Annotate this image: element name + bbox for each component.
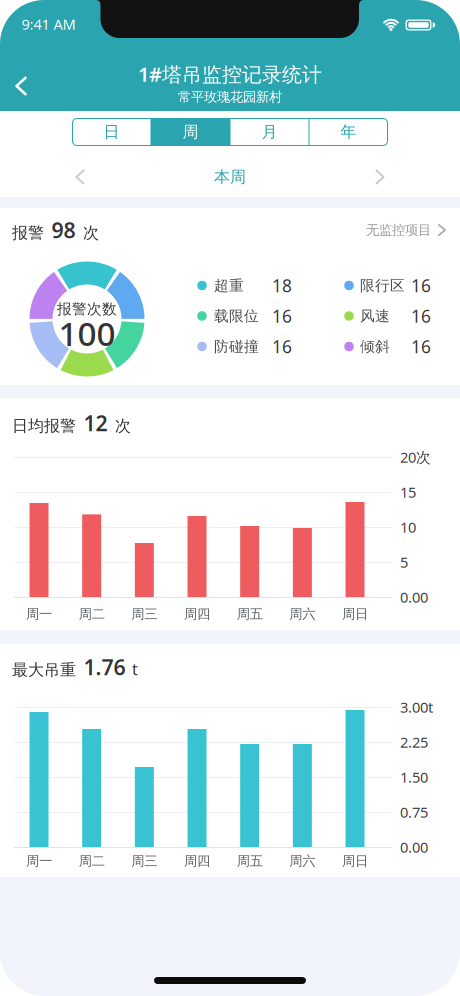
staticText: 周四 — [184, 853, 210, 869]
staticText: 周六 — [289, 606, 315, 622]
staticText: 周三 — [131, 853, 157, 869]
staticText: 次 — [78, 223, 99, 243]
staticText: 0.75 — [400, 802, 428, 822]
staticText: 次 — [110, 416, 131, 436]
staticText: 年 — [340, 122, 356, 142]
staticText: 超重 — [214, 276, 244, 294]
staticText: 15 — [400, 482, 416, 502]
staticText: 限行区 — [360, 276, 405, 294]
button[interactable]: 年 — [309, 118, 387, 146]
staticText: 12 — [83, 409, 107, 437]
staticText: 周日 — [342, 606, 368, 622]
staticText: 1#塔吊监控记录统计 — [138, 61, 322, 87]
staticText: 常平玫瑰花园新村 — [178, 89, 282, 105]
staticText: 最大吊重 — [12, 660, 81, 680]
staticText: 周四 — [184, 606, 210, 622]
button[interactable]: 日 — [72, 118, 150, 146]
staticText: 0.00 — [400, 837, 428, 857]
staticText: 周二 — [79, 853, 105, 869]
staticText: 周 — [182, 122, 198, 142]
staticText: 10 — [400, 517, 416, 537]
staticText: 2.25 — [400, 732, 428, 752]
staticText: 20次 — [400, 447, 431, 467]
button[interactable]: 周 — [151, 118, 230, 146]
staticText: 报警次数 — [57, 300, 117, 318]
staticText: 98 — [51, 216, 75, 244]
staticText: 日 — [103, 122, 119, 142]
button[interactable]: Next week — [360, 159, 400, 195]
staticText: 周三 — [131, 606, 157, 622]
button[interactable]: Back — [1, 66, 41, 106]
staticText: 无监控项目 — [366, 222, 431, 238]
staticText: 3.00t — [400, 697, 433, 717]
staticText: 防碰撞 — [214, 337, 259, 355]
staticText: 周六 — [289, 853, 315, 869]
staticText: 周二 — [79, 606, 105, 622]
staticText: 16 — [272, 304, 292, 327]
button[interactable]: 月 — [230, 118, 308, 146]
staticText: 1.76 — [83, 653, 125, 681]
staticText: 倾斜 — [360, 337, 390, 355]
staticText: 风速 — [360, 307, 390, 325]
staticText: 日均报警 — [12, 416, 81, 436]
staticText: 本周 — [214, 167, 246, 187]
staticText: 16 — [411, 274, 431, 297]
staticText: 1.50 — [400, 767, 428, 787]
staticText: 16 — [411, 304, 431, 327]
button[interactable]: 无监控项目 — [366, 222, 446, 238]
staticText: 周五 — [237, 853, 263, 869]
staticText: 报警 — [12, 223, 49, 243]
staticText: t — [128, 658, 138, 680]
staticText: 5 — [400, 552, 408, 572]
staticText: 9:41 AM — [21, 14, 75, 34]
staticText: 周一 — [26, 853, 52, 869]
staticText: 载限位 — [214, 307, 259, 325]
staticText: 16 — [272, 335, 292, 358]
staticText: 18 — [272, 274, 292, 297]
staticText: 0.00 — [400, 587, 428, 607]
button[interactable]: Previous week — [60, 159, 100, 195]
staticText: 周一 — [26, 606, 52, 622]
staticText: 16 — [411, 335, 431, 358]
staticText: 100 — [58, 311, 115, 355]
staticText: 月 — [261, 122, 277, 142]
staticText: 周五 — [237, 606, 263, 622]
staticText: 周日 — [342, 853, 368, 869]
